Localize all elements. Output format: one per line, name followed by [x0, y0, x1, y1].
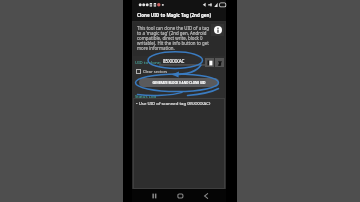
button[interactable]: Clear sectors — [136, 67, 168, 76]
button[interactable]: Read tag — [215, 58, 224, 67]
staticText: Clear sectors — [143, 69, 168, 74]
staticText: This tool can clone the UID of a tag to … — [137, 25, 209, 51]
button[interactable]: Paste UID — [205, 58, 214, 67]
staticText: Status Log — [135, 93, 157, 99]
staticText: UID to clone: — [135, 59, 162, 65]
staticText: Clone UID to Magic Tag (2nd gen) — [137, 12, 211, 18]
staticText: • Use UID of scanned tag (85XXXXAC) — [136, 100, 211, 106]
button[interactable]: GENERATE BLOCK 0 AND CLONE UID — [139, 78, 219, 87]
button[interactable]: Info — [211, 24, 224, 36]
button[interactable]: Title — [137, 0, 226, 21]
staticText: GENERATE BLOCK 0 AND CLONE UID — [152, 81, 206, 85]
staticText: 85XXXXAC — [163, 58, 185, 64]
